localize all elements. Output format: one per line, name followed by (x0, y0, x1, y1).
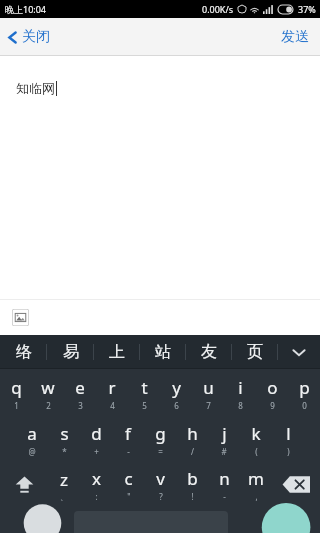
staticText: 上 (109, 342, 125, 362)
button[interactable]: f (112, 417, 144, 462)
button[interactable]: l (272, 417, 304, 462)
staticText: 0 (302, 400, 307, 411)
button[interactable]: v (144, 462, 176, 507)
staticText: @ (28, 446, 36, 457)
staticText: r (108, 376, 116, 399)
button[interactable]: w (32, 369, 64, 417)
staticText: 页 (247, 342, 263, 362)
button[interactable]: 站 (140, 335, 186, 369)
button[interactable]: Collapse candidates (278, 335, 320, 369)
button[interactable]: Shift (0, 462, 48, 507)
button[interactable]: e (64, 369, 96, 417)
button[interactable]: 页 (232, 335, 278, 369)
staticText: / (191, 446, 194, 457)
button[interactable]: y (160, 369, 192, 417)
staticText: 发送 (281, 28, 309, 46)
button[interactable]: 络 (0, 335, 47, 369)
staticText: 1 (14, 400, 19, 411)
staticText: s (60, 422, 69, 445)
staticText: n (219, 467, 230, 490)
staticText: p (299, 376, 310, 399)
button[interactable]: d (80, 417, 112, 462)
button[interactable]: x (80, 462, 112, 507)
staticText: ) (287, 446, 290, 457)
staticText: w (41, 376, 55, 399)
staticText: = (158, 446, 163, 457)
button[interactable]: j (208, 417, 240, 462)
button[interactable]: Space (74, 507, 228, 533)
staticText: - (127, 446, 130, 457)
staticText: e (75, 376, 85, 399)
button[interactable]: k (240, 417, 272, 462)
button[interactable]: n (208, 462, 240, 507)
staticText: , (255, 491, 258, 502)
staticText: " (127, 491, 131, 502)
staticText: f (125, 422, 131, 445)
staticText: - (223, 491, 226, 502)
button[interactable]: 上 (94, 335, 140, 369)
button[interactable]: 友 (186, 335, 232, 369)
staticText: 7 (206, 400, 211, 411)
button[interactable]: r (96, 369, 128, 417)
staticText: z (60, 468, 68, 491)
staticText: 8 (238, 400, 243, 411)
staticText: + (94, 446, 99, 457)
staticText: m (248, 467, 264, 490)
staticText: b (187, 467, 198, 490)
button[interactable]: z (48, 462, 80, 507)
staticText: 2 (46, 400, 51, 411)
button[interactable]: u (192, 369, 224, 417)
button[interactable]: o (256, 369, 288, 417)
staticText: ( (255, 446, 258, 457)
staticText: # (221, 446, 227, 457)
staticText: 4 (110, 400, 115, 411)
button[interactable]: Insert image (12, 309, 29, 326)
staticText: g (155, 422, 166, 445)
staticText: ? (159, 491, 163, 502)
button[interactable]: m (240, 462, 272, 507)
staticText: v (156, 467, 165, 490)
staticText: 友 (201, 342, 217, 362)
staticText: 易 (63, 342, 79, 362)
button[interactable]: b (176, 462, 208, 507)
staticText: a (27, 422, 37, 445)
staticText: 37% (298, 3, 316, 15)
button[interactable]: s (48, 417, 80, 462)
button[interactable]: q (0, 369, 32, 417)
button[interactable]: g (144, 417, 176, 462)
button[interactable]: h (176, 417, 208, 462)
staticText: x (92, 467, 101, 490)
button[interactable]: 关闭 (0, 24, 60, 50)
staticText: d (91, 422, 102, 445)
button[interactable]: Symbols (19, 507, 66, 533)
staticText: 络 (16, 342, 32, 362)
button[interactable]: Backspace (272, 462, 320, 507)
staticText: 0.00K/s (202, 3, 234, 15)
staticText: y (172, 376, 181, 399)
button[interactable]: t (128, 369, 160, 417)
staticText: q (11, 376, 22, 399)
staticText: h (187, 422, 198, 445)
button[interactable]: 易 (47, 335, 94, 369)
button[interactable]: 发送 (270, 23, 320, 51)
button[interactable]: a (16, 417, 48, 462)
staticText: : (95, 491, 98, 502)
staticText: 站 (155, 342, 171, 362)
button[interactable]: p (288, 369, 320, 417)
staticText: 知临网 (16, 80, 55, 96)
staticText: l (286, 422, 291, 445)
staticText: 5 (142, 400, 147, 411)
staticText: ! (191, 491, 194, 502)
button[interactable]: c (112, 462, 144, 507)
staticText: 9 (270, 400, 275, 411)
staticText: t (141, 376, 148, 399)
button[interactable]: i (224, 369, 256, 417)
staticText: 、 (60, 492, 68, 502)
staticText: 晚上10:04 (5, 3, 47, 15)
staticText: k (251, 422, 261, 445)
staticText: o (267, 376, 278, 399)
staticText: * (62, 446, 67, 457)
staticText: j (222, 422, 227, 445)
button[interactable]: Enter (258, 507, 312, 533)
staticText: i (238, 376, 243, 399)
